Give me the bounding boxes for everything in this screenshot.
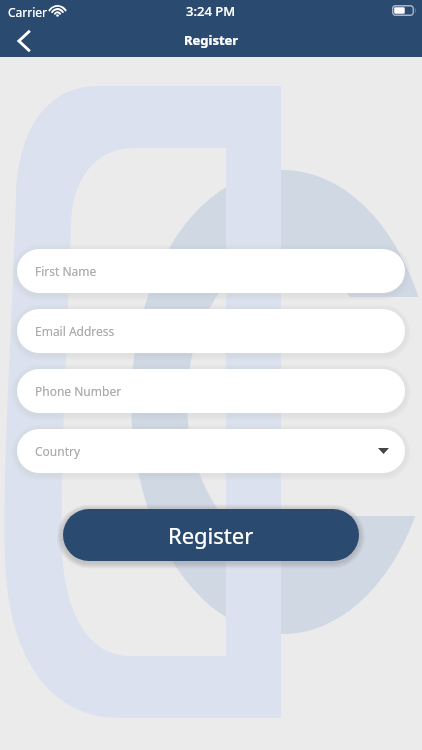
staticText: Email Address: [35, 323, 115, 339]
staticText: Carrier: [8, 4, 48, 20]
button[interactable]: Register: [63, 509, 359, 561]
staticText: Country: [35, 443, 81, 459]
staticText: First Name: [35, 263, 97, 279]
button[interactable]: Back: [9, 26, 39, 56]
button[interactable]: Phone Number: [17, 369, 405, 413]
staticText: 3:24 PM: [186, 2, 236, 20]
staticText: Register: [184, 31, 239, 49]
button[interactable]: First Name: [17, 249, 405, 293]
staticText: Register: [168, 520, 254, 550]
button[interactable]: Country: [17, 429, 405, 473]
staticText: Phone Number: [35, 383, 122, 399]
button[interactable]: Email Address: [17, 309, 405, 353]
